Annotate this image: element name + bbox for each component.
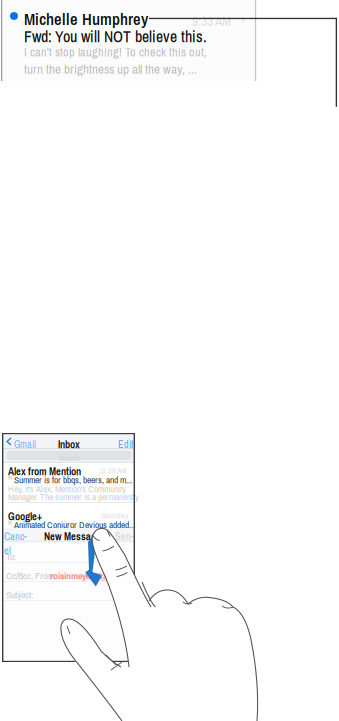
staticText: Edit — [118, 437, 133, 451]
button[interactable]: Edit — [118, 437, 134, 449]
button[interactable]: Michelle Humphrey — [0, 0, 257, 81]
button[interactable]: Alex from Mention — [2, 463, 135, 502]
staticText: I can't stop laughing! To check this out… — [24, 44, 207, 60]
staticText: Inbox — [58, 437, 80, 451]
staticText: roisinmeyer78@... — [50, 569, 115, 582]
staticText: Hey, it's Alex, Mention's Community — [8, 482, 126, 495]
staticText: Animated Coniuror Devious added... — [14, 518, 135, 531]
staticText: › — [241, 10, 245, 30]
button[interactable]: Google+ — [2, 507, 135, 532]
staticText: Send — [115, 529, 134, 557]
staticText: New Message — [44, 529, 101, 543]
staticText: 11:28 AM — [99, 465, 126, 476]
button[interactable]: Cancel — [4, 529, 30, 541]
staticText: Subject: — [6, 588, 33, 601]
staticText: Saturday — [101, 510, 128, 521]
button[interactable]: Gmail — [4, 437, 38, 449]
staticText: Cc/Bcc, From: — [6, 569, 56, 582]
button[interactable]: Send — [115, 529, 134, 541]
staticText: Michelle Humphrey — [24, 8, 148, 30]
staticText: Cancel — [4, 529, 27, 557]
staticText: Search — [59, 452, 80, 463]
staticText: Fwd: You will NOT believe this. — [24, 26, 207, 47]
staticText: Alex from Mention — [8, 464, 81, 478]
staticText: Gmail — [14, 437, 36, 451]
staticText: 9:33 AM — [192, 12, 231, 30]
staticText: Summer is for bbqs, beers, and m... — [14, 473, 132, 486]
staticText: Manager. The summer is a permanently — [8, 490, 139, 503]
staticText: turn the brightness up all the way, ... — [24, 60, 197, 78]
staticText: To: — [6, 550, 16, 563]
staticText: Google+ — [8, 509, 42, 523]
